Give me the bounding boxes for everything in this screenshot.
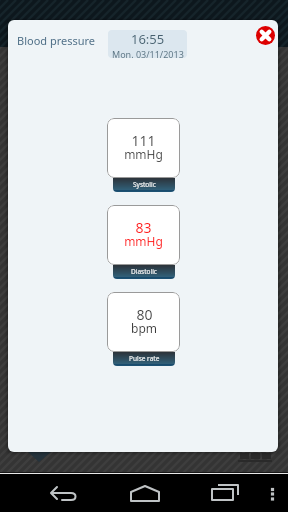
- staticText: Systolic: [133, 180, 156, 189]
- staticText: Mon. 03/11/2013: [112, 48, 184, 58]
- button[interactable]: 16:55: [108, 30, 187, 58]
- button[interactable]: More options: [262, 474, 284, 512]
- staticText: 80: [136, 305, 153, 324]
- button[interactable]: Back: [44, 474, 84, 512]
- button[interactable]: Close: [256, 26, 275, 45]
- staticText: 83: [135, 218, 152, 237]
- button[interactable]: Diastolic: [107, 205, 180, 279]
- staticText: mmHg: [124, 146, 163, 162]
- button[interactable]: Systolic: [107, 118, 180, 192]
- staticText: Pulse rate: [129, 354, 160, 363]
- button[interactable]: Pulse rate: [107, 292, 180, 366]
- button[interactable]: Recents: [205, 474, 245, 512]
- button[interactable]: Home: [125, 474, 169, 512]
- staticText: 16:55: [131, 30, 165, 48]
- staticText: bpm: [131, 320, 157, 336]
- staticText: Diastolic: [131, 267, 157, 276]
- staticText: mmHg: [124, 233, 163, 249]
- staticText: 111: [131, 131, 156, 150]
- staticText: Blood pressure: [17, 33, 96, 48]
